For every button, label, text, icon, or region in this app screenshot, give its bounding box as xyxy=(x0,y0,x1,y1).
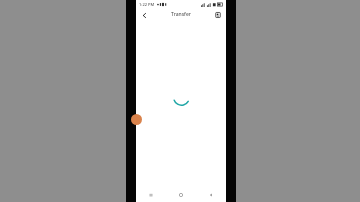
button[interactable]: Scan card xyxy=(212,9,224,21)
staticText: Transfer xyxy=(171,11,191,18)
button[interactable]: Back xyxy=(196,188,226,202)
staticText: 1:22 PM xyxy=(139,2,155,7)
button[interactable]: Recent apps xyxy=(136,188,166,202)
button[interactable]: Back xyxy=(138,9,150,21)
button[interactable]: Home xyxy=(166,188,196,202)
